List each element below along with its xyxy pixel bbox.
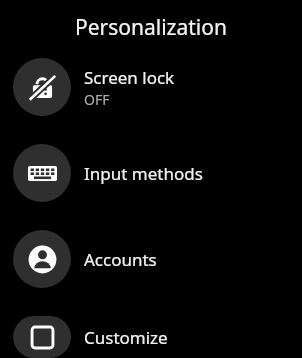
other: Input methods	[13, 144, 71, 202]
button[interactable]: Customize	[0, 316, 302, 358]
staticText: Input methods	[84, 162, 203, 185]
staticText: OFF	[84, 90, 110, 109]
staticText: Screen lock	[84, 66, 175, 89]
other: Accounts	[13, 230, 71, 288]
staticText: Customize	[84, 326, 168, 349]
staticText: Personalization	[75, 13, 227, 42]
button[interactable]: Screen lock	[0, 58, 302, 116]
other: Customize	[13, 316, 71, 358]
button[interactable]: Input methods	[0, 144, 302, 202]
other: Screen lock	[13, 58, 71, 116]
button[interactable]: Accounts	[0, 230, 302, 288]
staticText: Accounts	[84, 248, 157, 271]
